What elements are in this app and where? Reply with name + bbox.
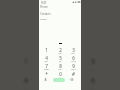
staticText: TUV [58, 68, 62, 70]
button[interactable]: 5 [55, 55, 65, 63]
button[interactable]: Backspace [68, 76, 75, 83]
staticText: 9:41 [41, 1, 47, 5]
button[interactable]: 8 [55, 63, 65, 71]
staticText: 9 [72, 63, 75, 69]
button[interactable]: 2 [55, 47, 65, 55]
button[interactable]: 5 [47, 76, 72, 90]
button[interactable]: Call [53, 78, 65, 82]
staticText: 3 [72, 47, 75, 53]
staticText: ABC [58, 52, 62, 54]
button[interactable]: 6 [80, 76, 105, 90]
button[interactable]: 9 [68, 63, 78, 71]
staticText: 3 [91, 57, 95, 66]
staticText: DEF [71, 52, 75, 54]
button[interactable]: 7 [41, 63, 51, 71]
staticText: 5 [58, 76, 62, 85]
button[interactable]: Phone [40, 5, 48, 9]
staticText: + [59, 76, 61, 78]
staticText: 7 [45, 63, 48, 69]
staticText: JKL [59, 60, 62, 62]
staticText: MNO [71, 60, 76, 62]
staticText: PQRS [44, 68, 49, 70]
staticText: 2 [59, 47, 62, 53]
staticText: Today [40, 18, 47, 21]
button[interactable]: * [41, 71, 51, 79]
staticText: 6 [91, 76, 95, 85]
button[interactable]: Contacts [40, 12, 51, 16]
button[interactable]: 1 [41, 47, 51, 55]
button[interactable]: 0 [55, 71, 65, 79]
button[interactable]: 2 [47, 57, 72, 77]
staticText: * [45, 71, 48, 77]
button[interactable]: 3 [68, 47, 78, 55]
button[interactable]: 3 [80, 57, 105, 77]
staticText: 2 [58, 57, 62, 66]
staticText: 8 [59, 63, 62, 69]
button[interactable]: # [68, 71, 78, 79]
staticText: 4 [45, 55, 48, 61]
button[interactable]: 6 [68, 55, 78, 63]
staticText: # [72, 71, 75, 77]
staticText: 5 [59, 55, 62, 61]
staticText: 4 [24, 76, 28, 85]
staticText: ABC [57, 68, 63, 72]
staticText: WXYZ [71, 68, 76, 70]
staticText: 6 [72, 55, 75, 61]
staticText: 0 [59, 71, 62, 77]
staticText: 1 [45, 47, 48, 53]
staticText: GHI [44, 60, 48, 62]
button[interactable]: Add contact [42, 76, 49, 83]
button[interactable]: 4 [41, 55, 51, 63]
